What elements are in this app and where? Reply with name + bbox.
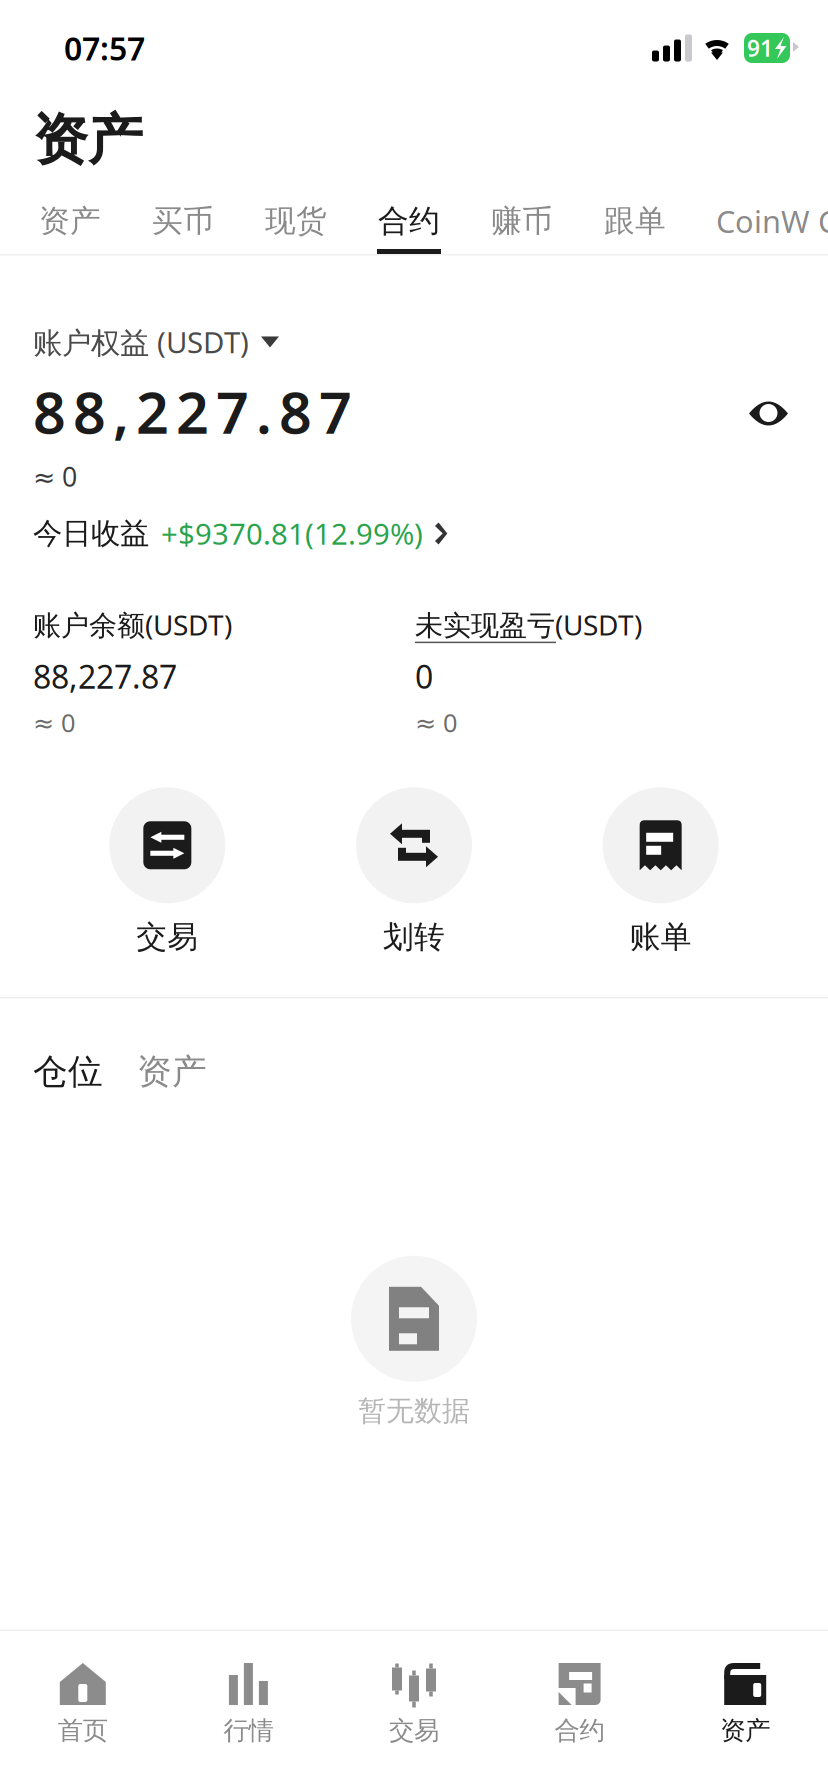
button[interactable]: 首页: [0, 1631, 166, 1792]
staticText: 仓位: [33, 1050, 103, 1093]
button[interactable]: 合约: [497, 1631, 662, 1792]
button[interactable]: 交易: [331, 1631, 497, 1792]
button[interactable]: 今日收益: [33, 514, 447, 553]
button[interactable]: 未实现盈亏(USDT): [415, 606, 642, 643]
staticText: 合约: [555, 1715, 605, 1746]
staticText: +$9370.81(12.99%): [161, 514, 423, 553]
staticText: 首页: [58, 1715, 108, 1746]
button[interactable]: 资产: [662, 1631, 828, 1792]
staticText: 资产: [137, 1050, 207, 1093]
staticText: 资产: [39, 202, 101, 240]
button[interactable]: 账单: [603, 787, 719, 956]
staticText: ≈ 0: [33, 459, 77, 494]
button[interactable]: 行情: [166, 1631, 331, 1792]
staticText: 合约: [378, 202, 440, 240]
staticText: 交易: [389, 1715, 439, 1746]
button[interactable]: Toggle balance visibility: [749, 398, 788, 428]
staticText: 资产: [720, 1715, 770, 1746]
staticText: 账户余额(USDT): [33, 606, 232, 643]
staticText: ≈ 0: [33, 706, 75, 739]
staticText: 0: [415, 655, 433, 698]
staticText: 账户权益 (USDT): [33, 322, 249, 361]
staticText: 现货: [265, 202, 327, 240]
button[interactable]: 跟单: [603, 200, 716, 254]
button[interactable]: 划转: [356, 787, 472, 956]
staticText: 行情: [223, 1715, 273, 1746]
staticText: 买币: [152, 202, 214, 240]
button[interactable]: 资产: [38, 200, 151, 254]
staticText: CoinW C: [716, 201, 828, 241]
staticText: 未实现盈亏(USDT): [415, 606, 642, 643]
staticText: 账单: [630, 918, 692, 956]
staticText: 07:57: [64, 27, 145, 69]
staticText: 88,227.87: [33, 655, 177, 698]
button[interactable]: CoinW C: [716, 200, 828, 254]
staticText: 今日收益: [33, 515, 149, 551]
button[interactable]: 账户权益 (USDT): [33, 322, 279, 361]
staticText: 跟单: [604, 202, 666, 240]
button[interactable]: 仓位: [33, 1050, 103, 1093]
staticText: 暂无数据: [358, 1394, 470, 1428]
staticText: 交易: [136, 918, 198, 956]
button[interactable]: 赚币: [490, 200, 603, 254]
button[interactable]: 交易: [109, 787, 225, 956]
staticText: 划转: [383, 918, 445, 956]
staticText: 88,227.87: [33, 373, 352, 450]
button[interactable]: 资产: [137, 1050, 207, 1093]
staticText: 赚币: [491, 202, 553, 240]
staticText: 资产: [33, 106, 143, 173]
button[interactable]: 买币: [151, 200, 264, 254]
button[interactable]: 现货: [264, 200, 377, 254]
staticText: ≈ 0: [415, 706, 457, 739]
button[interactable]: 合约: [377, 200, 490, 254]
staticText: 91: [747, 33, 773, 63]
